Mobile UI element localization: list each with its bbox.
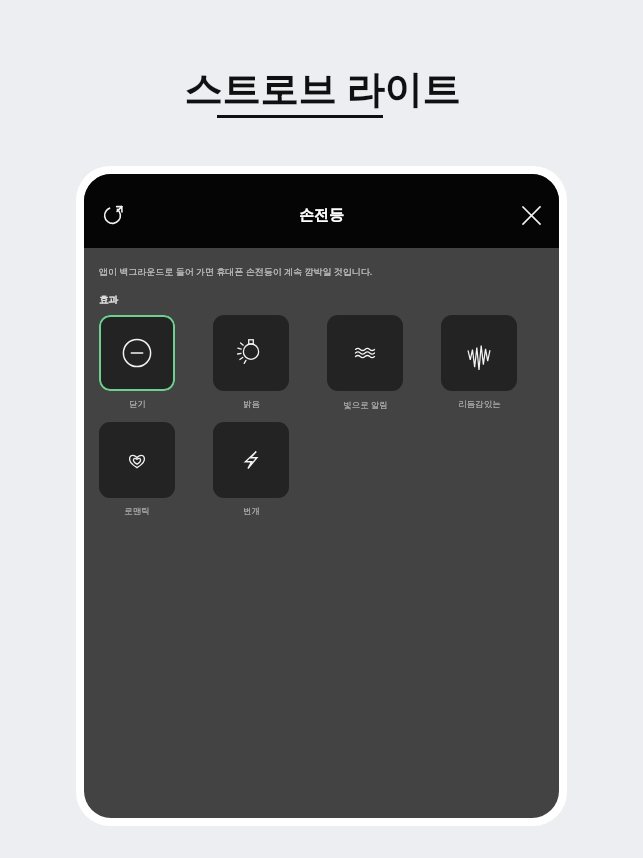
staticText: 효과 (99, 294, 118, 306)
staticText: 리듬감있는 (458, 399, 501, 410)
button[interactable]: 로맨틱 (99, 422, 175, 517)
staticText: 밝음 (243, 399, 260, 410)
staticText: 앱이 백그라운드로 들어 가면 휴대폰 손전등이 계속 깜박일 것입니다. (99, 265, 373, 277)
button[interactable]: 번개 (213, 422, 289, 517)
button[interactable]: Reset (90, 193, 134, 237)
staticText: 닫기 (129, 399, 146, 410)
staticText: 손전등 (299, 206, 344, 225)
staticText: 로맨틱 (124, 506, 150, 517)
button[interactable]: 밝음 (213, 315, 289, 410)
button[interactable]: 빛으로 알림 (327, 315, 403, 411)
staticText: 스트로브 라이트 (184, 62, 460, 114)
button[interactable]: 리듬감있는 (441, 315, 517, 410)
staticText: 번개 (243, 506, 260, 517)
staticText: 빛으로 알림 (343, 399, 388, 411)
button[interactable]: 닫기 (99, 315, 175, 410)
button[interactable]: Close (509, 193, 553, 237)
